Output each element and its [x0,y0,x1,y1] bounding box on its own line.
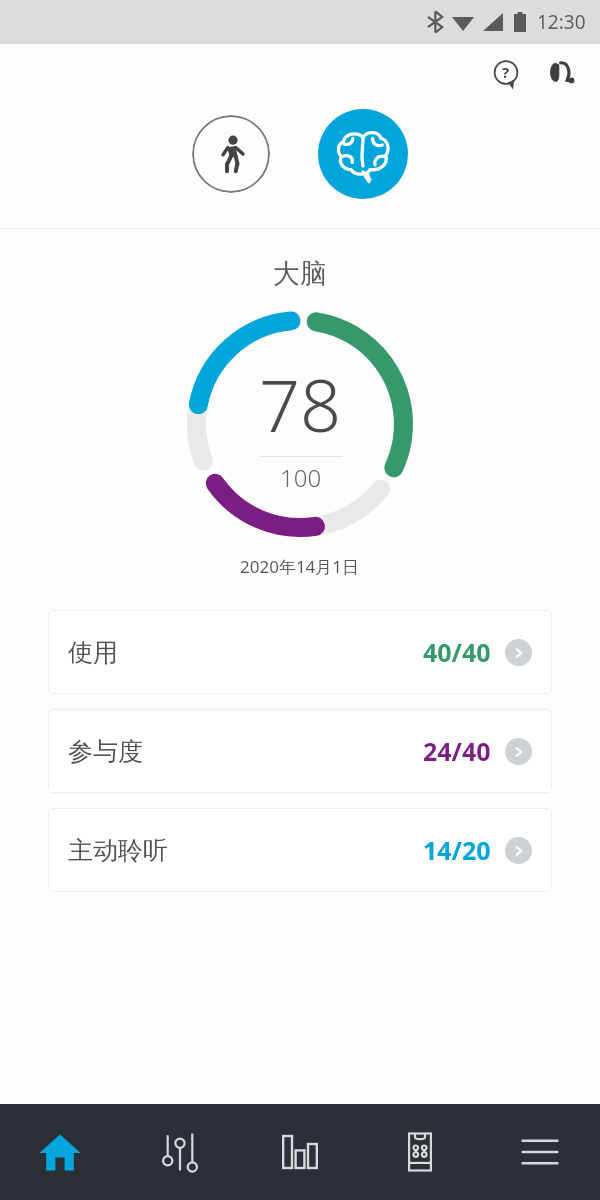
button[interactable]: 使用 [48,610,552,694]
button[interactable]: 参与度 [48,709,552,793]
staticText: 40/40 [423,635,491,669]
staticText: 使用 [68,637,118,668]
staticText: 78 [259,355,342,453]
button[interactable]: Home [0,1104,120,1200]
button[interactable]: Activity [192,115,270,193]
button[interactable]: Hearing aid [538,50,586,98]
staticText: 14/20 [423,833,491,867]
button[interactable]: Statistics [240,1104,360,1200]
staticText: 大脑 [273,257,327,291]
staticText: 100 [280,461,322,494]
button[interactable]: Equalizer [120,1104,240,1200]
staticText: ? [502,62,510,82]
button[interactable]: Help [484,52,528,96]
button[interactable]: 主动聆听 [48,808,552,892]
staticText: 12:30 [537,9,586,35]
button[interactable]: Brain [318,109,408,199]
staticText: 主动聆听 [68,835,168,866]
staticText: 参与度 [68,736,143,767]
staticText: 24/40 [423,734,491,768]
button[interactable]: Menu [480,1104,600,1200]
staticText: 2020年14月1日 [240,555,360,578]
button[interactable]: Remote [360,1104,480,1200]
